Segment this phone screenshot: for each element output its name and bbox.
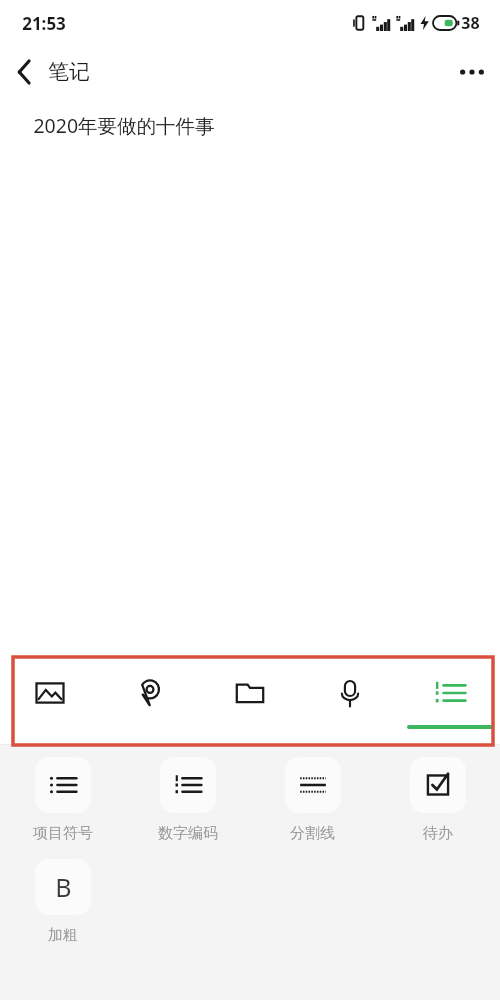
staticText: 2020年要做的十件事	[33, 112, 215, 139]
staticText: 38	[461, 12, 480, 34]
staticText: 分割线	[290, 824, 335, 843]
staticText: 加粗	[48, 926, 78, 945]
staticText: 21:53	[22, 12, 66, 35]
staticText: 项目符号	[33, 824, 93, 843]
button[interactable]: 项目符号	[0, 755, 125, 845]
button[interactable]: Formatting	[400, 657, 500, 745]
button[interactable]: More options	[444, 46, 500, 98]
button[interactable]: 2020年要做的十件事	[0, 98, 500, 657]
button[interactable]: 待办	[375, 755, 500, 845]
button[interactable]: 分割线	[250, 755, 375, 845]
button[interactable]: Insert file	[200, 657, 300, 745]
button[interactable]: 数字编码	[125, 755, 250, 845]
button[interactable]: Insert location	[100, 657, 200, 745]
button[interactable]: B	[0, 857, 125, 947]
button[interactable]: Back	[0, 48, 48, 96]
staticText: B	[55, 870, 72, 904]
staticText: 笔记	[48, 59, 90, 85]
button[interactable]: Insert image	[0, 657, 100, 745]
staticText: 待办	[423, 824, 453, 843]
staticText: 数字编码	[158, 824, 218, 843]
button[interactable]: Voice input	[300, 657, 400, 745]
